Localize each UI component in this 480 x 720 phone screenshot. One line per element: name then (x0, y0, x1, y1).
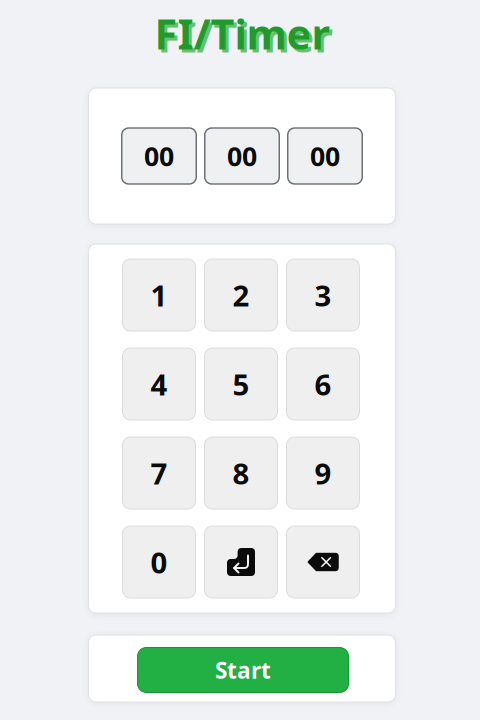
staticText: 1 (150, 275, 167, 314)
button[interactable]: Delete (286, 526, 359, 598)
staticText: 8 (232, 453, 249, 492)
button[interactable]: 8 (204, 437, 277, 509)
staticText: 00 (227, 138, 257, 174)
button[interactable]: 3 (286, 259, 359, 331)
button[interactable]: 2 (204, 259, 277, 331)
staticText: 6 (314, 364, 331, 403)
staticText: FI/Timer (154, 6, 329, 61)
button[interactable]: 6 (286, 348, 359, 420)
staticText: 7 (150, 453, 167, 492)
button[interactable]: 5 (204, 348, 277, 420)
button[interactable]: 4 (122, 348, 195, 420)
staticText: 5 (232, 364, 249, 403)
button[interactable]: 1 (122, 259, 195, 331)
staticText: 0 (150, 542, 167, 581)
button[interactable]: Enter (204, 526, 277, 598)
staticText: 3 (314, 275, 331, 314)
staticText: FI/Timer (157, 9, 332, 64)
staticText: 4 (150, 364, 167, 403)
staticText: Start (215, 655, 271, 685)
staticText: 9 (314, 453, 331, 492)
button[interactable]: Start (136, 646, 347, 691)
staticText: 2 (232, 275, 249, 314)
staticText: 00 (144, 138, 174, 174)
button[interactable]: 9 (286, 437, 359, 509)
staticText: 00 (310, 138, 340, 174)
button[interactable]: 0 (122, 526, 195, 598)
button[interactable]: 7 (122, 437, 195, 509)
